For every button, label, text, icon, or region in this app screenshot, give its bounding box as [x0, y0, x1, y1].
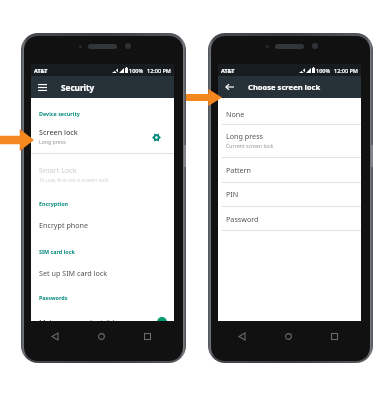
button[interactable]: Recents [141, 330, 153, 342]
staticText: Screen lock [39, 127, 78, 137]
button[interactable]: Pattern [226, 163, 361, 177]
staticText: Security [61, 82, 95, 93]
button[interactable]: Screen lock [39, 122, 161, 149]
staticText: AT&T [221, 67, 235, 74]
button[interactable]: Back [236, 330, 248, 342]
button[interactable]: Menu [31, 76, 174, 98]
staticText: Set up SIM card lock [39, 268, 108, 278]
button[interactable]: Long press [226, 128, 361, 152]
button[interactable]: Home [95, 330, 107, 342]
staticText: Long press [226, 131, 264, 141]
button[interactable]: Back [49, 330, 61, 342]
staticText: Encryption [39, 200, 69, 207]
staticText: SIM card lock [39, 248, 75, 255]
staticText: To use, first set a screen lock [39, 176, 109, 183]
staticText: 12:00 PM [147, 67, 171, 74]
button[interactable]: Home [282, 330, 294, 342]
staticText: Make passwords visible [39, 317, 157, 321]
button[interactable]: Smart Lock [39, 160, 174, 188]
staticText: Pattern [226, 165, 252, 175]
button[interactable]: Encrypt phone [39, 218, 174, 232]
button[interactable]: Password [226, 212, 361, 226]
staticText: 100% [316, 67, 331, 74]
button[interactable]: Recents [328, 330, 340, 342]
button[interactable]: Make passwords visible [39, 312, 167, 321]
button[interactable]: Back [218, 76, 361, 98]
staticText: 12:00 PM [334, 67, 358, 74]
staticText: Passwords [39, 294, 68, 301]
staticText: None [226, 109, 245, 119]
button[interactable]: Menu [31, 76, 53, 98]
staticText: Encrypt phone [39, 220, 89, 230]
staticText: AT&T [34, 67, 48, 74]
button[interactable]: None [226, 107, 361, 121]
button[interactable]: Screen lock settings [152, 133, 161, 142]
button[interactable]: PIN [226, 187, 361, 201]
staticText: 100% [129, 67, 144, 74]
staticText: PIN [226, 189, 239, 199]
staticText: Password [226, 214, 259, 224]
button[interactable]: Set up SIM card lock [39, 266, 174, 280]
staticText: Long press [39, 138, 66, 145]
staticText: Device security [39, 110, 80, 117]
button[interactable]: Back [218, 76, 240, 98]
staticText: Current screen lock [226, 142, 274, 149]
staticText: Smart Lock [39, 165, 77, 175]
staticText: Choose screen lock [248, 82, 321, 92]
